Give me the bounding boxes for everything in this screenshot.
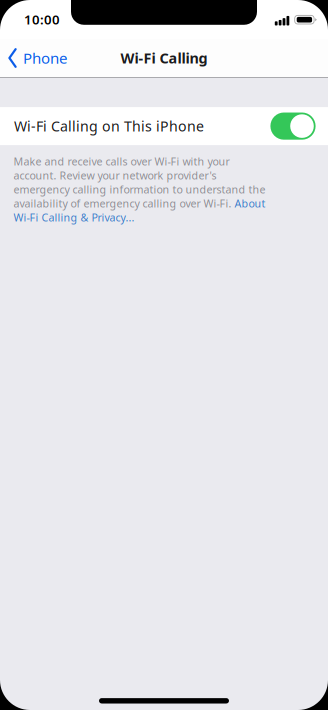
staticText: Make and receive calls over Wi-Fi with y…	[13, 154, 265, 225]
button[interactable]: Wi-Fi Calling on This iPhone	[0, 107, 328, 145]
staticText: Phone	[23, 48, 67, 68]
staticText: 10:00	[24, 10, 60, 28]
staticText: Wi-Fi Calling on This iPhone	[14, 116, 204, 136]
button[interactable]: Phone	[0, 40, 75, 76]
staticText: Wi-Fi Calling	[120, 48, 207, 68]
